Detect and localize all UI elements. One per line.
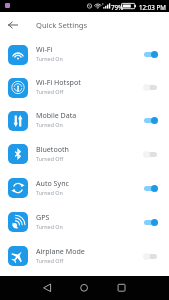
staticText: Airplane Mode: [36, 246, 85, 256]
button[interactable]: Home: [66, 276, 102, 300]
button[interactable]: Auto Sync: [0, 171, 169, 205]
staticText: Wi-Fi Hotspot: [36, 77, 81, 87]
staticText: Turned Off: [36, 155, 64, 162]
staticText: Turned On: [36, 189, 63, 196]
button[interactable]: Back: [29, 276, 65, 300]
button[interactable]: Back: [0, 12, 26, 38]
staticText: Bluetooth: [36, 144, 69, 154]
staticText: GPS: [36, 212, 50, 222]
staticText: Turned Off: [36, 88, 64, 95]
button[interactable]: Wi-Fi Hotspot: [0, 71, 169, 104]
staticText: 12:03 PM: [139, 3, 166, 11]
staticText: 79%: [111, 3, 124, 11]
staticText: Mobile Data: [36, 110, 77, 120]
button[interactable]: Bluetooth: [0, 137, 169, 171]
button[interactable]: Wi-Fi: [0, 38, 169, 71]
staticText: Turned On: [36, 55, 63, 62]
staticText: Wi-Fi: [36, 44, 53, 54]
staticText: Turned On: [36, 121, 63, 128]
button[interactable]: Airplane Mode: [0, 239, 169, 273]
staticText: Turned On: [36, 223, 63, 230]
staticText: Auto Sync: [36, 178, 69, 188]
button[interactable]: GPS: [0, 205, 169, 239]
staticText: Quick Settings: [36, 20, 88, 30]
button[interactable]: Mobile Data: [0, 104, 169, 137]
staticText: Turned Off: [36, 257, 64, 264]
button[interactable]: Recents: [103, 276, 139, 300]
